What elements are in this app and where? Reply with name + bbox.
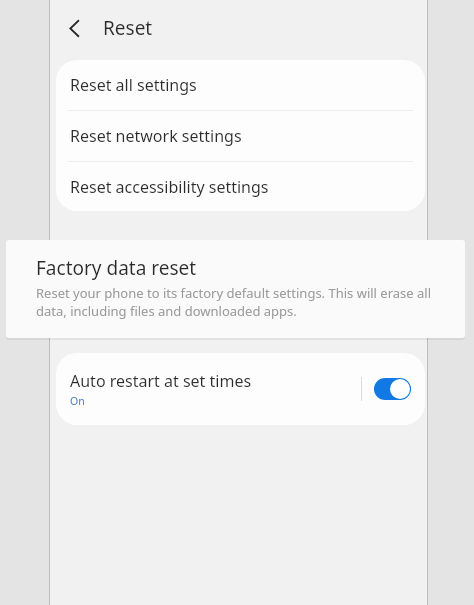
staticText: Auto restart at set times — [70, 370, 252, 392]
button[interactable]: Reset all settings — [56, 60, 425, 110]
staticText: Reset accessibility settings — [70, 176, 269, 198]
button[interactable]: Back — [56, 10, 92, 46]
staticText: Reset network settings — [70, 125, 242, 147]
button[interactable]: Reset accessibility settings — [56, 162, 425, 211]
button[interactable]: Reset network settings — [56, 111, 425, 161]
staticText: Reset your phone to its factory default … — [36, 284, 447, 320]
button[interactable]: Factory data reset — [6, 240, 465, 338]
button[interactable]: Auto restart at set times — [56, 353, 425, 425]
staticText: On — [70, 394, 85, 408]
staticText: Reset all settings — [70, 74, 197, 96]
staticText: Factory data reset — [36, 255, 197, 281]
staticText: Reset — [103, 15, 153, 41]
button[interactable]: Auto restart at set times, on — [374, 378, 411, 400]
